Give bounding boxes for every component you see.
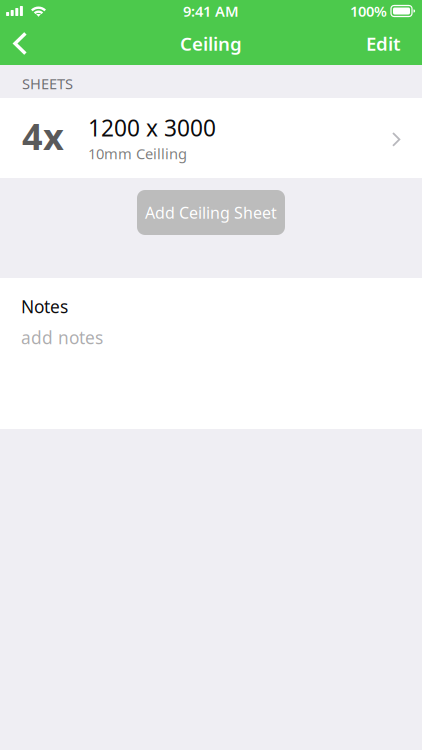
- staticText: 100%: [350, 1, 387, 21]
- button[interactable]: 4x: [0, 98, 422, 178]
- staticText: 1200 x 3000: [88, 113, 216, 143]
- staticText: SHEETS: [22, 74, 73, 93]
- staticText: Add Ceiling Sheet: [145, 202, 277, 223]
- staticText: add notes: [21, 326, 103, 349]
- staticText: Notes: [21, 295, 68, 318]
- button[interactable]: Edit: [352, 22, 415, 64]
- staticText: Edit: [366, 31, 401, 56]
- staticText: Ceiling: [180, 31, 242, 56]
- staticText: 9:41 AM: [183, 1, 239, 21]
- button[interactable]: Back: [0, 22, 40, 64]
- staticText: 4x: [22, 112, 64, 160]
- staticText: 10mm Ceilling: [88, 144, 187, 163]
- button[interactable]: Add Ceiling Sheet: [137, 190, 285, 235]
- button[interactable]: Notes: [0, 278, 422, 429]
